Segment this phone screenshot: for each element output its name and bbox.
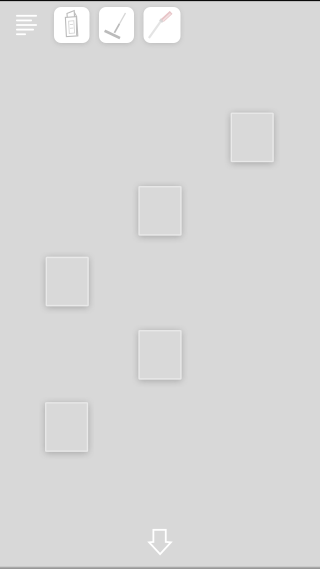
button[interactable]: Spray cleaner [54,7,89,43]
button[interactable]: Scroll down [142,524,178,560]
button[interactable]: Squeegee [99,7,134,43]
button[interactable]: Brush [143,7,180,43]
button[interactable]: Levels [8,7,45,43]
